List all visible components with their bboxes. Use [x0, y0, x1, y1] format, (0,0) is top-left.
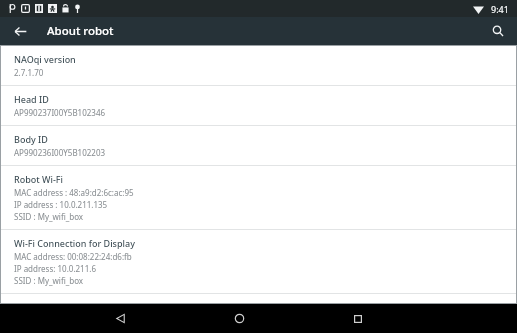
- staticText: Robot Wi-Fi: [14, 173, 64, 185]
- button[interactable]: NAOqi version: [0, 46, 517, 85]
- staticText: Wi-Fi Connection for Display: [14, 237, 135, 249]
- staticText: IP address: 10.0.211.6: [14, 263, 96, 274]
- button[interactable]: Body ID: [0, 126, 517, 165]
- button[interactable]: Back: [8, 19, 32, 43]
- staticText: IP address : 10.0.211.135: [14, 199, 108, 210]
- staticText: NAOqi version: [14, 53, 76, 65]
- button[interactable]: Recent apps: [341, 304, 375, 333]
- button[interactable]: Head ID: [0, 86, 517, 125]
- staticText: AP990236I00Y5B102203: [14, 147, 106, 158]
- staticText: SSID : My_wifi_box: [14, 211, 84, 222]
- staticText: MAC address : 48:a9:d2:6c:ac:95: [14, 187, 134, 198]
- staticText: SSID : My_wifi_box: [14, 275, 84, 286]
- button[interactable]: Robot Wi-Fi: [0, 166, 517, 229]
- staticText: MAC address: 00:08:22:24:d6:fb: [14, 251, 132, 262]
- staticText: About robot: [47, 23, 114, 39]
- staticText: AP990237I00Y5B102346: [14, 107, 106, 118]
- button[interactable]: Search: [486, 19, 510, 43]
- button[interactable]: Wi-Fi Connection for Display: [0, 230, 517, 293]
- staticText: 2.7.1.70: [14, 67, 44, 78]
- button[interactable]: Back: [103, 304, 137, 333]
- staticText: Head ID: [14, 93, 49, 105]
- button[interactable]: Home: [222, 304, 256, 333]
- staticText: 9:41: [491, 3, 509, 15]
- staticText: Body ID: [14, 133, 48, 145]
